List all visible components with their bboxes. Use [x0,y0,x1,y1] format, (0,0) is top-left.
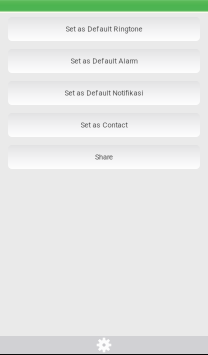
staticText: Share [95,153,113,161]
staticText: Set as Contact [80,121,127,129]
staticText: Set as Default Ringtone [65,25,142,33]
button[interactable]: Set as Default Alarm [8,49,200,73]
staticText: Set as Default Alarm [70,57,137,65]
button[interactable]: Set as Default Notifikasi [8,81,200,105]
button[interactable]: Set as Default Ringtone [8,17,200,41]
button[interactable]: Set as Contact [8,113,200,137]
staticText: Set as Default Notifikasi [64,89,143,97]
button[interactable]: Settings [0,336,208,354]
button[interactable]: Share [8,145,200,169]
